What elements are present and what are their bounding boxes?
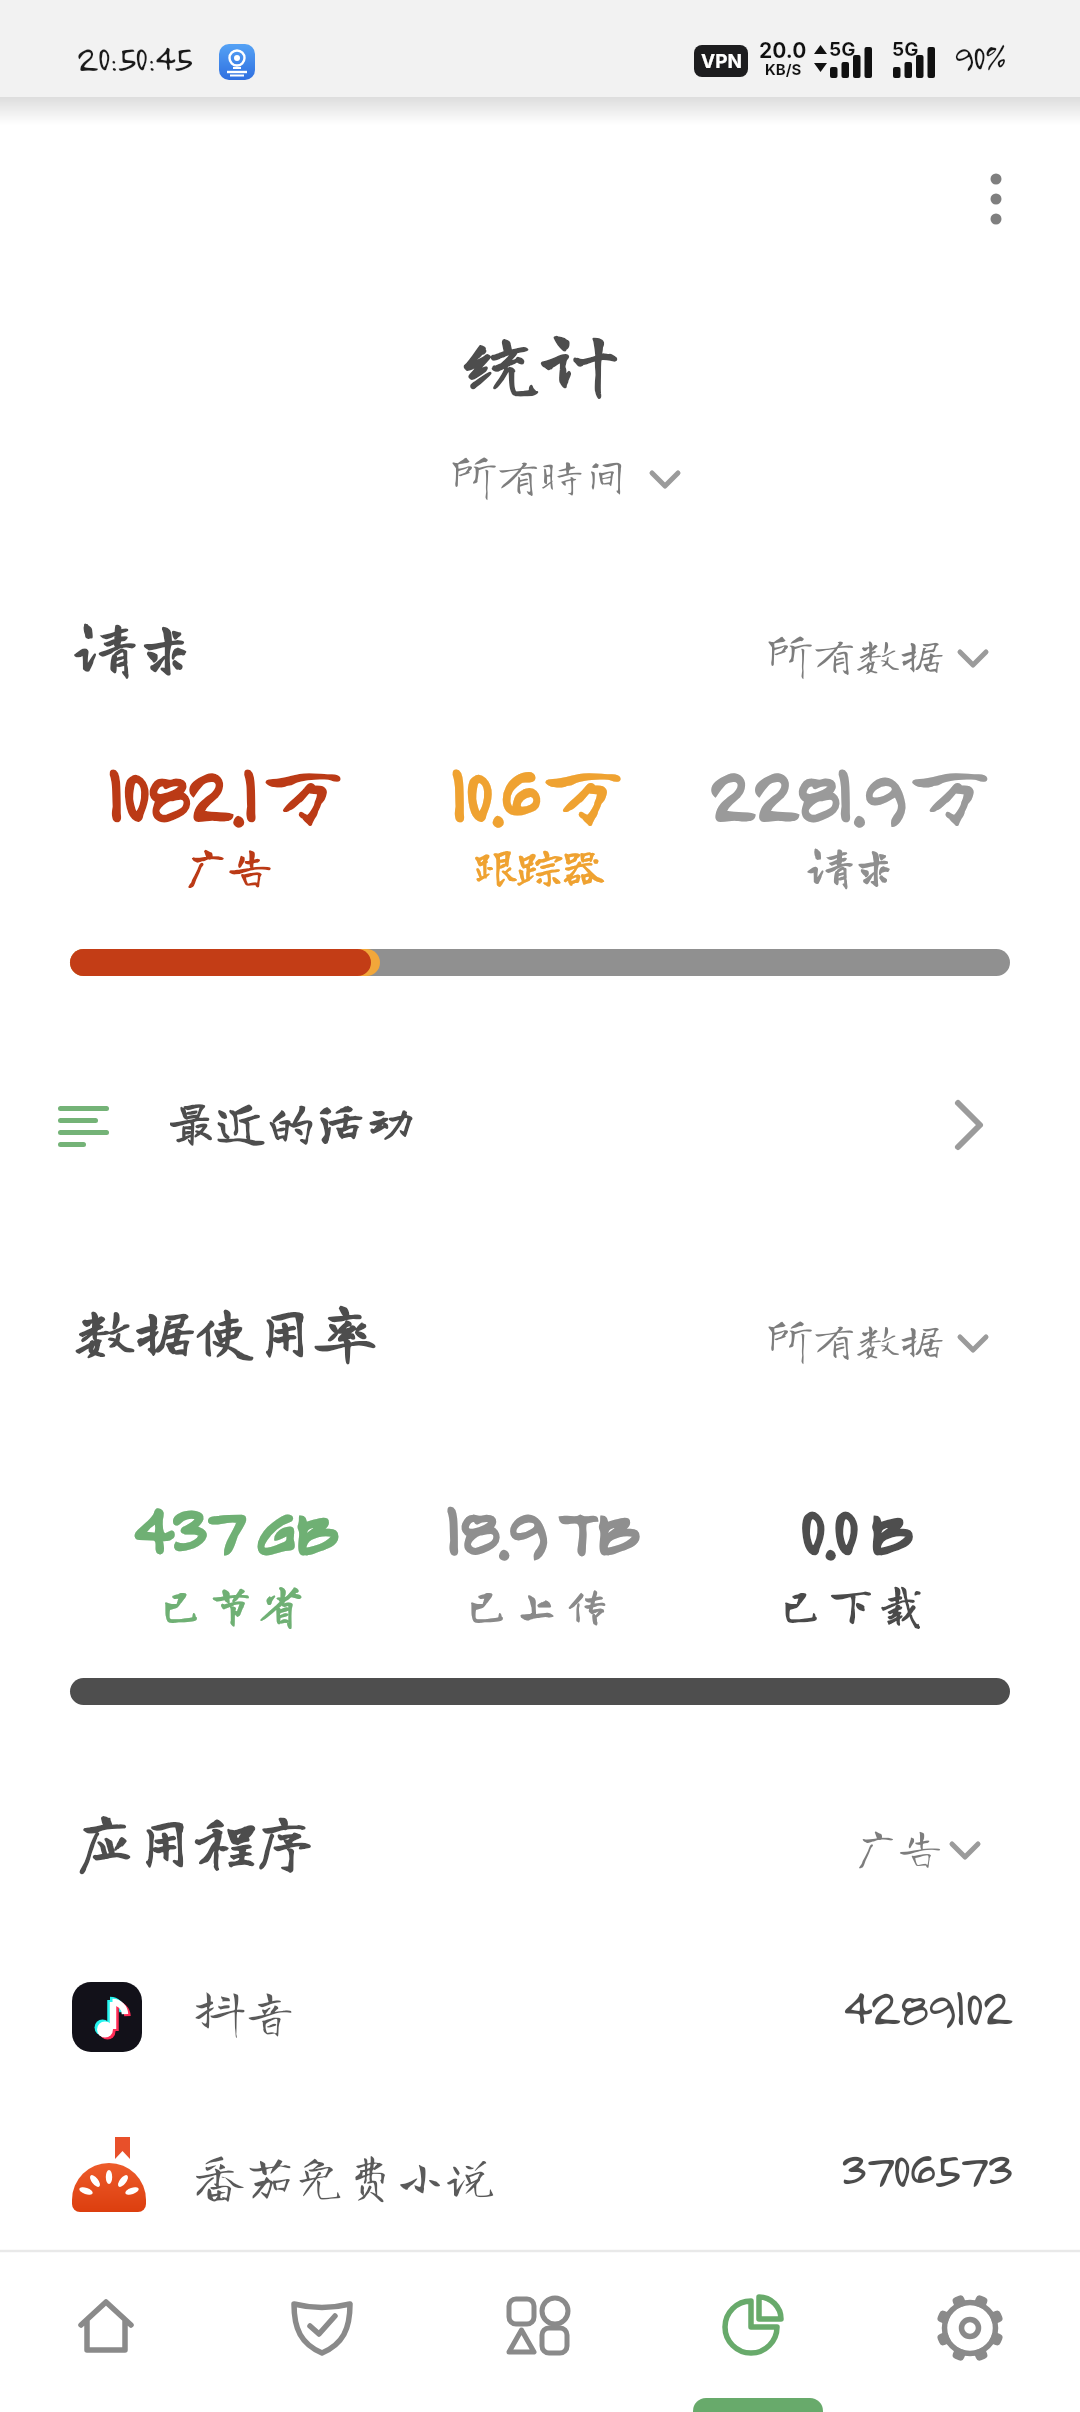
staticText: TB <box>557 1484 637 1572</box>
staticText: 请求 <box>75 616 195 676</box>
staticText: 5G <box>892 38 919 61</box>
staticText: 1082.1万 <box>106 745 350 839</box>
button[interactable]: 所有时间 <box>0 440 1080 510</box>
button[interactable] <box>0 2250 214 2400</box>
button[interactable] <box>862 2250 1078 2400</box>
staticText: 90% <box>953 34 1005 78</box>
staticText: 最近的活动 <box>166 1096 416 1146</box>
staticText: 20.0 <box>759 38 807 63</box>
staticText: B <box>868 1484 910 1572</box>
button[interactable] <box>430 2250 646 2400</box>
staticText: GB <box>254 1484 336 1572</box>
staticText: 番茄免费小说 <box>195 2150 495 2200</box>
staticText: 广告 <box>854 1824 942 1868</box>
staticText: 已上传 <box>465 1582 615 1626</box>
staticText: 3706573 <box>839 2136 1012 2200</box>
staticText: 10.6万 <box>449 745 631 839</box>
staticText: 20:50:45 <box>76 34 192 79</box>
staticText: 广告 <box>184 843 272 887</box>
staticText: KB/S <box>765 60 802 78</box>
staticText: 统计 <box>462 322 619 400</box>
staticText: 数据使用率 <box>75 1300 375 1360</box>
staticText: 跟踪器 <box>474 843 606 887</box>
button[interactable]: 最近的活动 <box>0 1080 1080 1170</box>
staticText: 0.0 <box>799 1484 856 1572</box>
staticText: 437 <box>132 1484 242 1572</box>
button[interactable] <box>966 150 1026 250</box>
staticText: 已节省 <box>159 1582 309 1626</box>
staticText: 所有数据 <box>768 1317 944 1361</box>
staticText: 所有时间 <box>452 453 628 497</box>
staticText: 已下载 <box>779 1582 929 1626</box>
staticText: 应用程序 <box>75 1810 315 1870</box>
button[interactable]: 所有数据 <box>760 1305 1000 1375</box>
staticText: 18.9 <box>444 1484 545 1572</box>
button[interactable] <box>214 2250 430 2400</box>
button[interactable]: 所有数据 <box>760 620 1000 690</box>
staticText: 请求 <box>808 843 896 887</box>
staticText: 5G <box>829 38 856 61</box>
staticText: 抖音 <box>195 1986 295 2036</box>
staticText: 所有数据 <box>768 632 944 676</box>
button[interactable]: 抖音 <box>0 1962 1080 2072</box>
staticText: 4289102 <box>842 1974 1012 2038</box>
button[interactable]: 番茄免费小说 <box>0 2122 1080 2232</box>
button[interactable]: 广告 <box>820 1812 1000 1882</box>
staticText: VPN <box>701 50 742 73</box>
button[interactable] <box>646 2250 862 2400</box>
staticText: 2281.9万 <box>708 745 997 839</box>
